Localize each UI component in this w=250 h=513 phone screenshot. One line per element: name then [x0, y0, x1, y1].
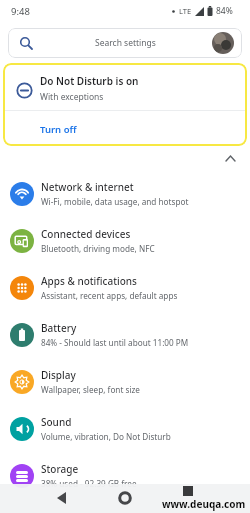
staticText: Assistant, recent apps, default apps — [41, 290, 178, 301]
staticText: Do Not Disturb is on — [40, 74, 139, 88]
button[interactable] — [40, 484, 84, 513]
staticText: 84% - Should last until about 11:00 PM — [41, 337, 189, 348]
button[interactable]: Battery — [0, 311, 250, 358]
staticText: Display — [41, 368, 76, 382]
button[interactable]: Apps & notifications — [0, 264, 250, 311]
button[interactable]: Display — [0, 358, 250, 405]
staticText: LTE — [179, 6, 192, 16]
staticText: Wi-Fi, mobile, data usage, and hotspot — [41, 196, 189, 207]
button[interactable]: Sound — [0, 405, 250, 452]
button[interactable]: Turn off — [40, 123, 77, 136]
button[interactable] — [212, 146, 250, 170]
staticText: www.deuqa.com — [162, 497, 246, 511]
button[interactable] — [212, 32, 234, 54]
staticText: 84% — [216, 5, 233, 17]
button[interactable] — [103, 484, 147, 513]
staticText: Turn off — [40, 123, 77, 136]
staticText: 38% used - 92.39 GB free — [41, 478, 137, 489]
button[interactable]: Search settings — [8, 28, 242, 58]
staticText: Volume, vibration, Do Not Disturb — [41, 431, 171, 442]
staticText: Bluetooth, driving mode, NFC — [41, 243, 155, 254]
staticText: With exceptions — [40, 91, 104, 103]
staticText: Storage — [41, 462, 79, 476]
staticText: Battery — [41, 321, 77, 335]
button[interactable]: Storage — [0, 452, 250, 499]
button[interactable]: Network & internet — [0, 170, 250, 217]
button[interactable] — [166, 484, 210, 513]
button[interactable]: Do Not Disturb is on — [3, 63, 247, 146]
staticText: Apps & notifications — [41, 274, 137, 288]
staticText: Connected devices — [41, 227, 131, 241]
staticText: 9:48 — [11, 5, 30, 18]
staticText: Sound — [41, 415, 72, 429]
staticText: Wallpaper, sleep, font size — [41, 384, 140, 395]
staticText: Network & internet — [41, 180, 134, 194]
button[interactable]: Connected devices — [0, 217, 250, 264]
staticText: Search settings — [95, 37, 156, 49]
